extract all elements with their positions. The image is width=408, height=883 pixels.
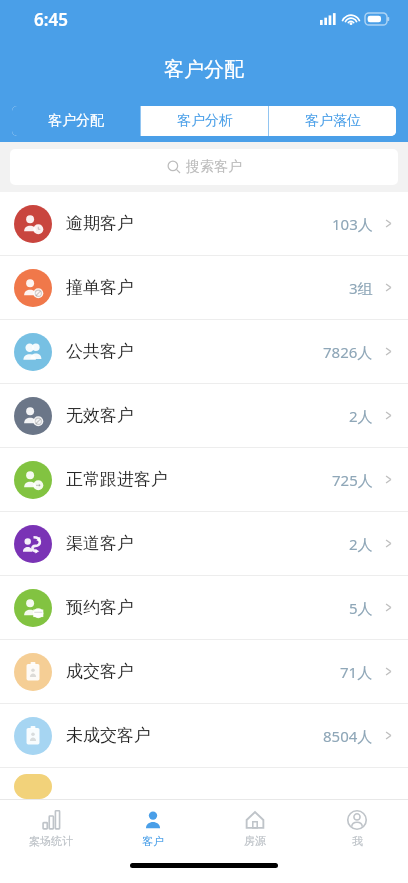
staticText: 成交客户 [66, 661, 134, 682]
staticText: 撞单客户 [66, 277, 134, 298]
staticText: 逾期客户 [66, 213, 134, 234]
staticText: 71人 [340, 662, 373, 682]
staticText: 6:45 [34, 8, 68, 31]
button[interactable]: 案场统计 [0, 800, 102, 856]
staticText: 搜索客户 [186, 158, 242, 176]
button[interactable]: 逾期客户 [0, 192, 408, 255]
button[interactable]: 撞单客户 [0, 256, 408, 319]
staticText: 客户落位 [305, 112, 361, 130]
staticText: 7826人 [323, 342, 373, 362]
button[interactable]: 无效客户 [0, 384, 408, 447]
staticText: 正常跟进客户 [66, 469, 168, 490]
staticText: 渠道客户 [66, 533, 134, 554]
staticText: 客户分配 [164, 57, 244, 82]
staticText: 客户 [142, 834, 164, 848]
staticText: 725人 [332, 470, 373, 490]
staticText: 我 [352, 834, 363, 848]
button[interactable]: 客户落位 [269, 106, 396, 136]
staticText: 2人 [349, 534, 373, 554]
button[interactable]: 成交客户 [0, 640, 408, 703]
button[interactable]: 房源 [204, 800, 306, 856]
staticText: 案场统计 [29, 834, 73, 848]
staticText: 预约客户 [66, 597, 134, 618]
button[interactable]: 正常跟进客户 [0, 448, 408, 511]
staticText: 5人 [349, 598, 373, 618]
staticText: 3组 [349, 278, 373, 298]
button[interactable]: 公共客户 [0, 320, 408, 383]
button[interactable]: 客户分析 [141, 106, 268, 136]
staticText: 未成交客户 [66, 725, 151, 746]
staticText: 8504人 [323, 726, 373, 746]
button[interactable]: 未成交客户 [0, 704, 408, 767]
staticText: 客户分配 [48, 112, 104, 130]
button[interactable]: 客户 [102, 800, 204, 856]
button[interactable]: 搜索客户 [10, 149, 398, 185]
button[interactable]: 我 [306, 800, 408, 856]
button[interactable]: 客户分配 [12, 106, 140, 136]
staticText: 无效客户 [66, 405, 134, 426]
staticText: 103人 [332, 214, 373, 234]
staticText: 公共客户 [66, 341, 134, 362]
staticText: 客户分析 [177, 112, 233, 130]
button[interactable]: 渠道客户 [0, 512, 408, 575]
staticText: 2人 [349, 406, 373, 426]
button[interactable]: 预约客户 [0, 576, 408, 639]
staticText: 房源 [244, 834, 266, 848]
